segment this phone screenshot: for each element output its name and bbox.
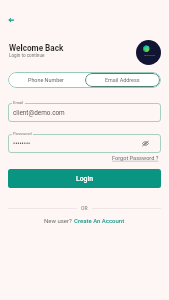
staticText: OR	[81, 205, 88, 211]
button[interactable]: Phone Number	[8, 72, 84, 88]
staticText: Login	[76, 175, 93, 183]
staticText: Login to continue	[9, 53, 45, 58]
button[interactable]: Email Address	[85, 73, 160, 87]
staticText: Password	[13, 131, 32, 136]
button[interactable]: Back	[3, 13, 19, 29]
staticText: Email Address	[105, 77, 140, 83]
button[interactable]: Forgot Password ?	[112, 155, 159, 162]
staticText: Welcome Back	[9, 43, 64, 53]
staticText: Forgot Password ?	[112, 155, 159, 162]
staticText: NEXTBANK	[144, 54, 156, 57]
staticText: Phone Number	[28, 77, 64, 83]
staticText: New user?	[44, 217, 74, 224]
button[interactable]: Login	[8, 169, 161, 188]
staticText: ••••••••	[13, 140, 31, 148]
button[interactable]: Toggle password visibility	[140, 138, 151, 149]
staticText: client@demo.com	[13, 109, 65, 117]
button[interactable]: Create An Account	[74, 217, 125, 224]
staticText: Create An Account	[74, 217, 125, 224]
staticText: Email	[13, 100, 24, 105]
